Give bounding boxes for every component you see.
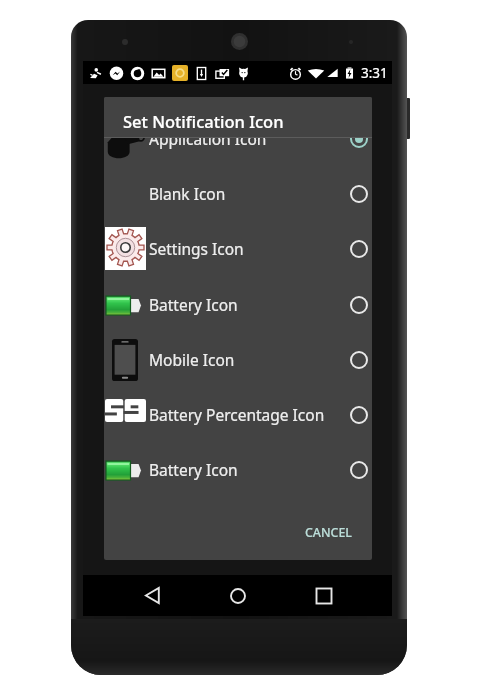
button[interactable]: Battery Icon (104, 442, 372, 497)
button[interactable]: Application Icon (104, 138, 372, 166)
button[interactable]: Settings Icon (104, 221, 372, 276)
staticText: CANCEL (305, 524, 352, 541)
button[interactable]: Mobile Icon (104, 332, 372, 387)
staticText: Settings Icon (149, 238, 244, 259)
button[interactable]: Battery Percentage Icon (104, 387, 372, 442)
staticText: Set Notification Icon (123, 110, 284, 132)
staticText: Battery Icon (149, 459, 238, 480)
button[interactable]: Recent apps (302, 575, 346, 616)
staticText: Blank Icon (149, 183, 226, 204)
button[interactable]: Back (130, 575, 174, 616)
button[interactable]: Blank Icon (104, 166, 372, 221)
staticText: Battery Percentage Icon (149, 404, 325, 425)
staticText: Battery Icon (149, 294, 238, 315)
button[interactable]: Battery Icon (104, 277, 372, 332)
button[interactable]: Home (216, 575, 260, 616)
staticText: 3:31 (361, 64, 388, 82)
button[interactable]: CANCEL (298, 518, 359, 547)
staticText: Application Icon (149, 138, 267, 149)
staticText: Mobile Icon (149, 349, 235, 370)
